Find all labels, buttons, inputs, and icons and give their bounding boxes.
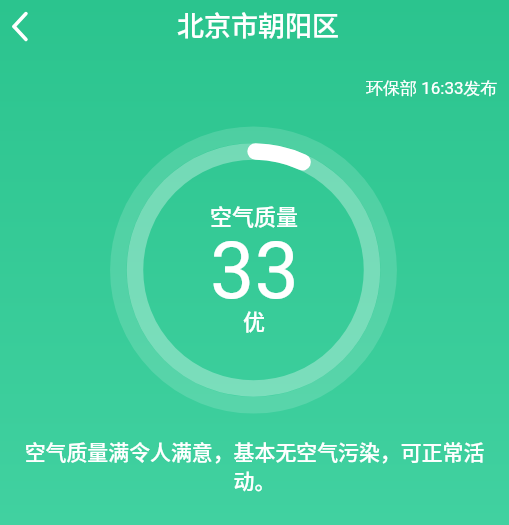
staticText: 空气质量 bbox=[210, 199, 299, 231]
staticText: 优 bbox=[243, 304, 266, 336]
staticText: 环保部 16:33发布 bbox=[366, 78, 498, 99]
staticText: 33 bbox=[210, 225, 299, 318]
staticText: 北京市朝阳区 bbox=[177, 5, 339, 44]
button[interactable] bbox=[0, 4, 44, 48]
staticText: 空气质量满令人满意，基本无空气污染，可正常活动。 bbox=[23, 436, 486, 495]
